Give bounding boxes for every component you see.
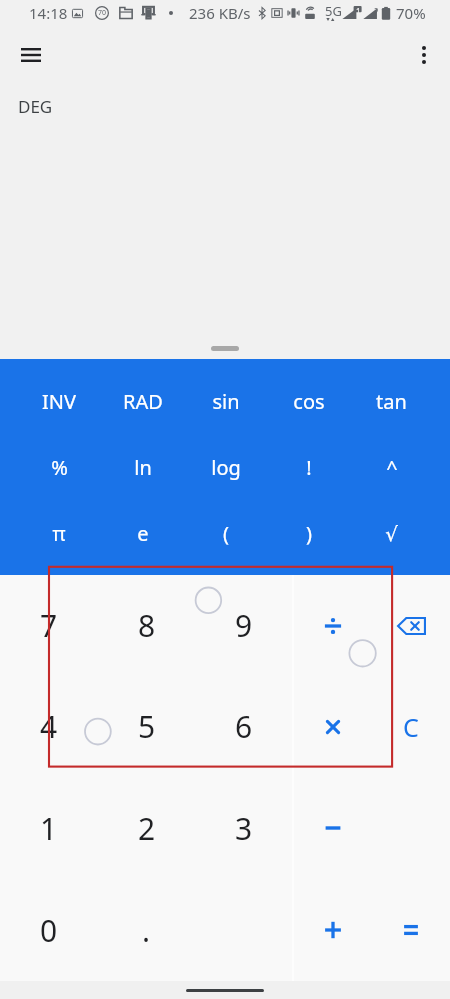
button[interactable]: 3 <box>195 777 292 879</box>
button[interactable]: Subtract <box>294 777 372 879</box>
staticText: e <box>137 520 149 547</box>
button[interactable]: Add <box>294 879 372 981</box>
staticText: 9 <box>235 605 253 646</box>
button[interactable]: Menu <box>9 33 53 77</box>
staticText: log <box>211 454 241 481</box>
button[interactable]: ^ <box>350 434 433 500</box>
staticText: DEG <box>18 95 53 118</box>
button[interactable]: % <box>17 434 101 500</box>
staticText: ln <box>134 454 152 481</box>
button[interactable]: ln <box>101 434 184 500</box>
staticText: π <box>52 520 66 547</box>
button[interactable]: 7 <box>0 575 98 676</box>
button[interactable]: π <box>17 500 101 566</box>
staticText: 2 <box>374 6 379 13</box>
button[interactable]: ! <box>267 434 350 500</box>
staticText: 1 <box>356 6 361 13</box>
button[interactable]: Equals <box>372 879 450 981</box>
button[interactable]: cos <box>267 368 350 434</box>
staticText: 5 <box>138 706 156 747</box>
staticText: % <box>51 454 68 481</box>
staticText: ^ <box>386 454 398 481</box>
staticText: cos <box>293 388 325 415</box>
staticText: tan <box>376 388 407 415</box>
staticText: 6 <box>235 706 253 747</box>
button[interactable]: INV <box>17 368 101 434</box>
staticText: sin <box>212 388 240 415</box>
button[interactable]: 2 <box>98 777 195 879</box>
staticText: 3 <box>235 808 253 849</box>
button[interactable]: 9 <box>195 575 292 676</box>
button[interactable]: RAD <box>101 368 184 434</box>
button[interactable]: 4 <box>0 676 98 777</box>
staticText: 4 <box>40 706 58 747</box>
staticText: 7 <box>40 605 58 646</box>
button[interactable]: Backspace <box>372 575 450 676</box>
staticText: ! <box>306 454 312 481</box>
staticText: 236 KB/s <box>189 3 251 23</box>
button[interactable]: 1 <box>0 777 98 879</box>
button[interactable]: 6 <box>195 676 292 777</box>
button[interactable]: e <box>101 500 184 566</box>
staticText: 14:18 <box>29 3 68 23</box>
button[interactable]: ) <box>267 500 350 566</box>
staticText: ( <box>223 520 229 547</box>
staticText: C <box>403 710 419 744</box>
staticText: ) <box>306 520 312 547</box>
button[interactable]: Divide <box>294 575 372 676</box>
button[interactable]: tan <box>350 368 433 434</box>
button[interactable]: log <box>184 434 267 500</box>
button[interactable]: Multiply <box>294 676 372 777</box>
staticText: 70 <box>98 8 107 18</box>
staticText: 1 <box>40 808 58 849</box>
button[interactable]: . <box>98 879 195 981</box>
staticText: 2 <box>138 808 156 849</box>
button[interactable]: 8 <box>98 575 195 676</box>
button[interactable]: 0 <box>0 879 98 981</box>
staticText: . <box>142 910 151 951</box>
button[interactable]: Clear <box>372 676 450 777</box>
staticText: RAD <box>123 388 163 415</box>
staticText: INV <box>42 388 76 415</box>
staticText: 70% <box>396 3 426 23</box>
button[interactable]: √ <box>350 500 433 566</box>
staticText: 5G <box>325 2 342 20</box>
button[interactable]: ( <box>184 500 267 566</box>
staticText: 8 <box>138 605 156 646</box>
button[interactable]: 5 <box>98 676 195 777</box>
staticText: 0 <box>40 910 58 951</box>
button[interactable]: sin <box>184 368 267 434</box>
button[interactable]: More options <box>402 33 446 77</box>
staticText: √ <box>385 522 398 545</box>
